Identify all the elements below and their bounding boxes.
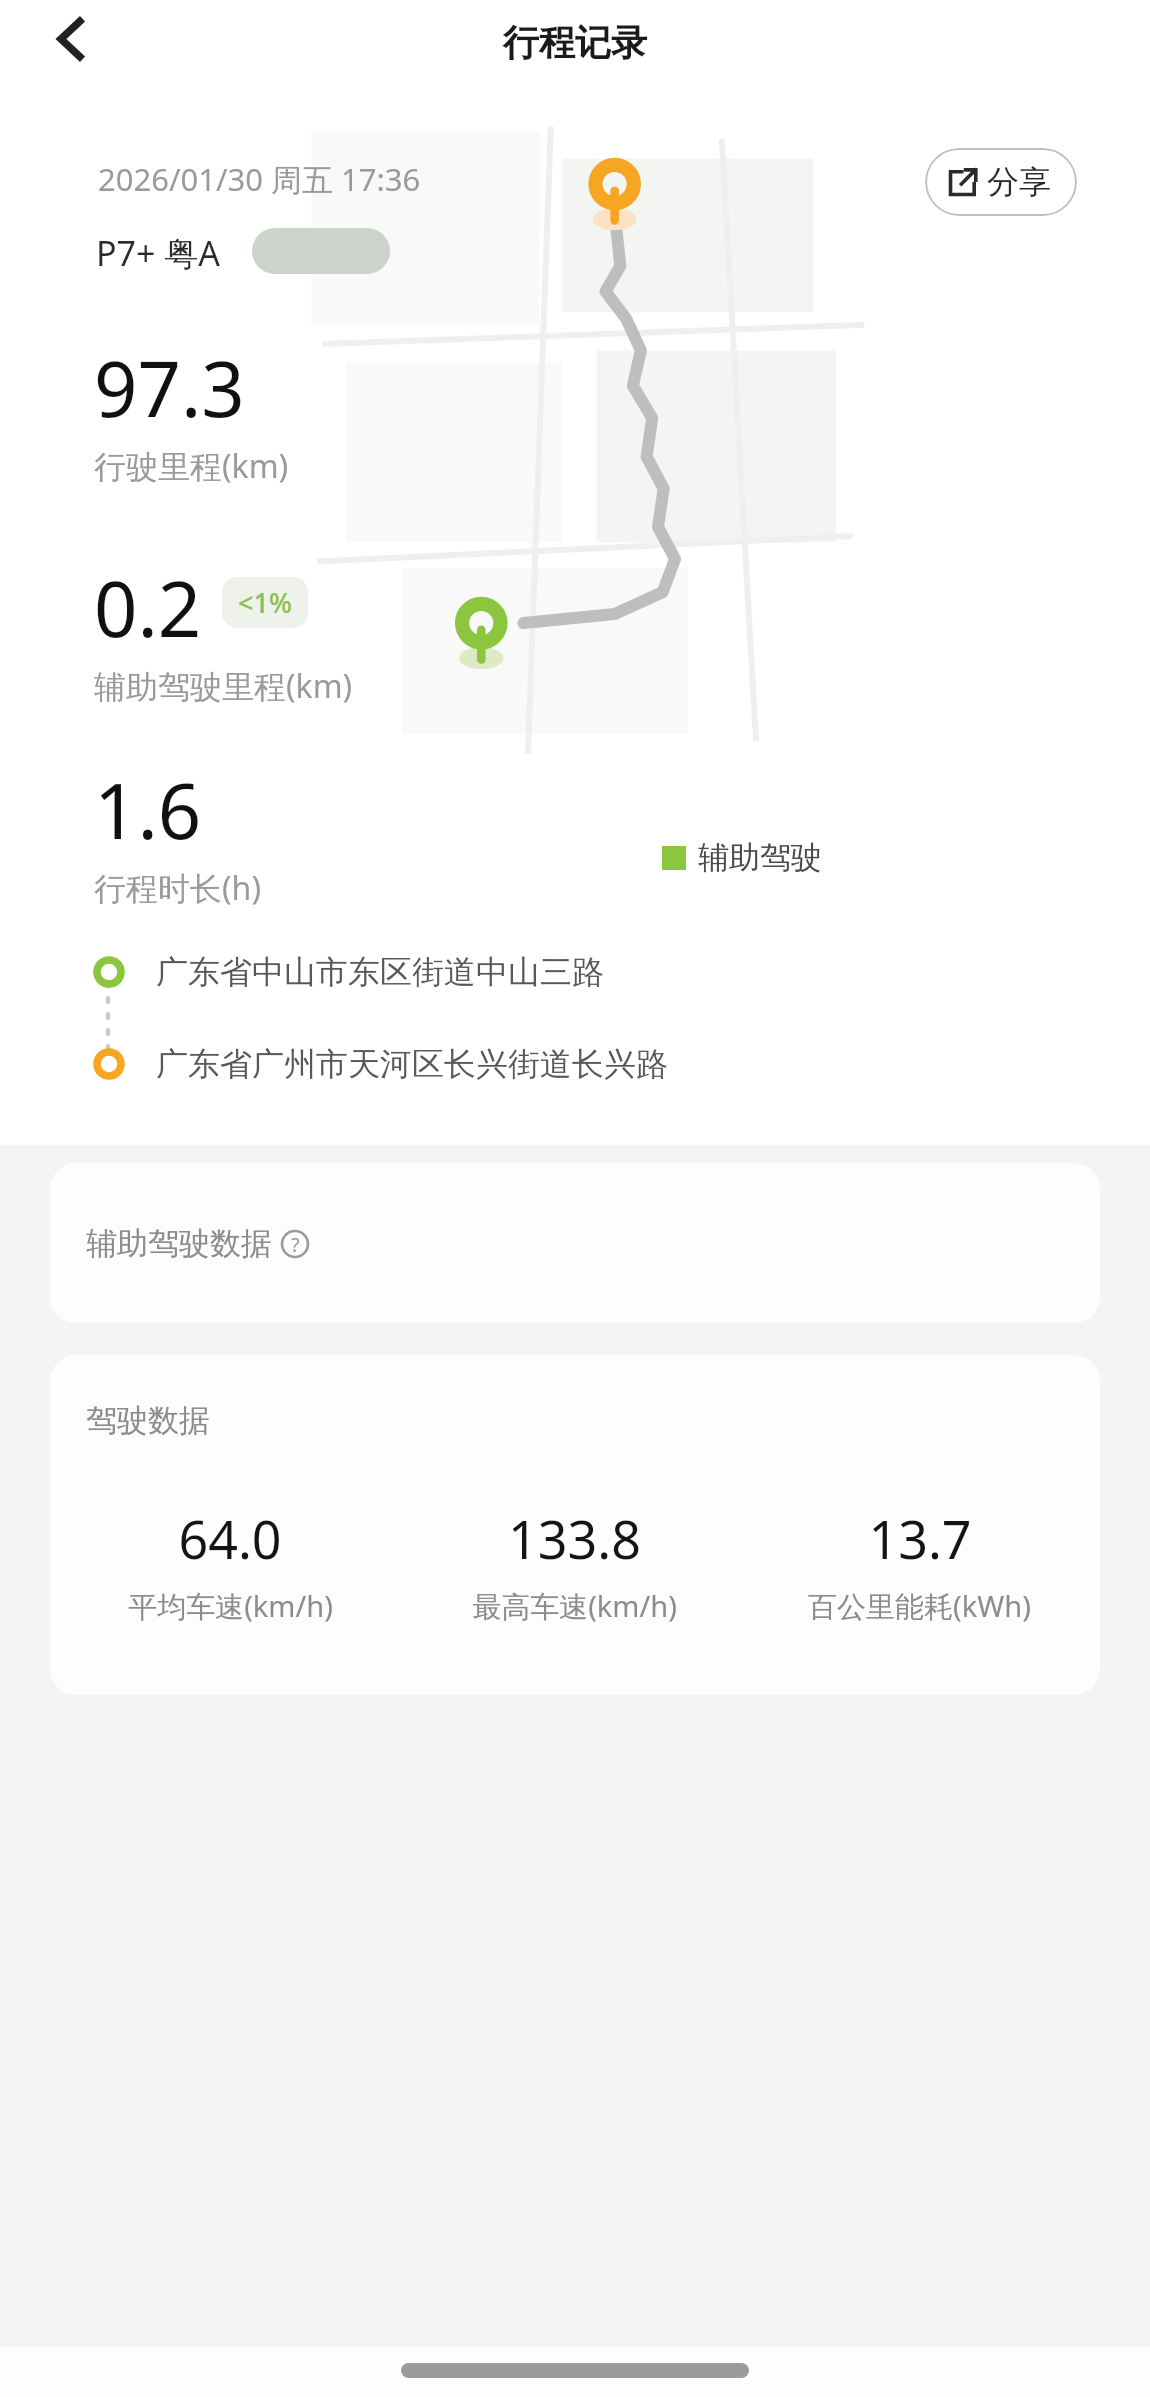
- staticText: 1.6: [94, 758, 202, 862]
- button[interactable]: 辅助驾驶数据: [50, 1163, 1100, 1323]
- staticText: 0.2: [94, 556, 202, 660]
- staticText: 平均车速(km/h): [128, 1586, 333, 1626]
- staticText: 13.7: [868, 1503, 972, 1574]
- staticText: 行驶里程(km): [94, 444, 289, 488]
- button[interactable]: 分享: [925, 148, 1077, 216]
- staticText: 行程记录: [503, 20, 647, 65]
- staticText: 最高车速(km/h): [472, 1586, 677, 1626]
- staticText: 广东省中山市东区街道中山三路: [156, 952, 604, 992]
- staticText: <1%: [238, 584, 292, 621]
- staticText: 2026/01/30 周五 17:36: [98, 158, 421, 200]
- staticText: 行程时长(h): [94, 866, 261, 910]
- staticText: 辅助驾驶里程(km): [94, 664, 353, 708]
- staticText: 辅助驾驶数据: [86, 1224, 272, 1263]
- staticText: ?: [291, 1231, 300, 1258]
- staticText: 百公里能耗(kWh): [808, 1586, 1031, 1626]
- button[interactable]: Back: [26, 0, 118, 78]
- staticText: 133.8: [508, 1503, 641, 1574]
- staticText: 分享: [987, 162, 1051, 202]
- staticText: 广东省广州市天河区长兴街道长兴路: [156, 1044, 668, 1084]
- staticText: 辅助驾驶: [698, 838, 822, 877]
- staticText: P7+ 粤A: [96, 230, 221, 276]
- staticText: 驾驶数据: [86, 1401, 210, 1440]
- staticText: 64.0: [178, 1503, 282, 1574]
- staticText: 97.3: [94, 336, 245, 440]
